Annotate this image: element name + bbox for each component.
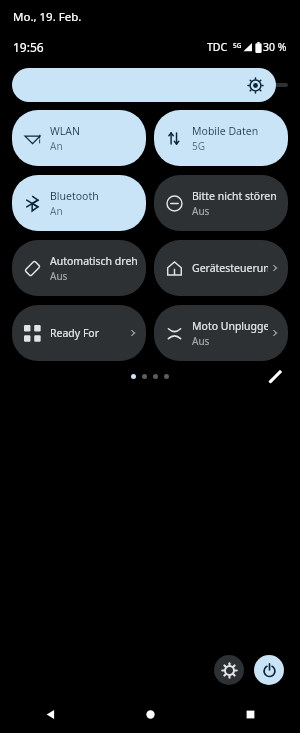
button[interactable]: Moto Unplugged xyxy=(154,305,288,361)
button[interactable]: Bluetooth xyxy=(12,175,146,231)
staticText: WLAN xyxy=(50,124,80,138)
button[interactable]: Gerätesteuerung xyxy=(154,240,288,296)
button[interactable]: Bitte nicht stören xyxy=(154,175,288,231)
button[interactable]: Brightness xyxy=(12,68,288,102)
staticText: Aus xyxy=(50,269,68,283)
staticText: Ready For xyxy=(50,326,100,340)
staticText: Bluetooth xyxy=(50,189,99,203)
staticText: Bitte nicht stören xyxy=(192,189,277,203)
button[interactable]: Mobile Daten xyxy=(154,110,288,166)
staticText: 30 % xyxy=(263,40,287,54)
staticText: Automatisch drehen xyxy=(50,254,138,268)
staticText: Moto Unplugged xyxy=(192,319,268,333)
staticText: Aus xyxy=(192,334,210,348)
staticText: 5G xyxy=(192,139,205,153)
staticText: 5G xyxy=(233,41,242,50)
staticText: Mobile Daten xyxy=(192,124,259,138)
button[interactable]: Edit tiles xyxy=(264,365,286,387)
button[interactable]: Power xyxy=(254,655,284,685)
button[interactable]: WLAN xyxy=(12,110,146,166)
staticText: Aus xyxy=(192,204,210,218)
button[interactable]: Recents xyxy=(200,695,300,733)
button[interactable]: Back xyxy=(0,695,100,733)
staticText: 19:56 xyxy=(13,39,44,55)
staticText: Mo., 19. Feb. xyxy=(13,9,82,25)
button[interactable]: Home xyxy=(100,695,200,733)
staticText: TDC xyxy=(207,40,228,54)
staticText: An xyxy=(50,204,63,218)
button[interactable]: Automatisch drehen xyxy=(12,240,146,296)
staticText: Gerätesteuerung xyxy=(192,261,268,275)
button[interactable]: Settings xyxy=(214,655,244,685)
staticText: An xyxy=(50,139,63,153)
button[interactable]: Ready For xyxy=(12,305,146,361)
